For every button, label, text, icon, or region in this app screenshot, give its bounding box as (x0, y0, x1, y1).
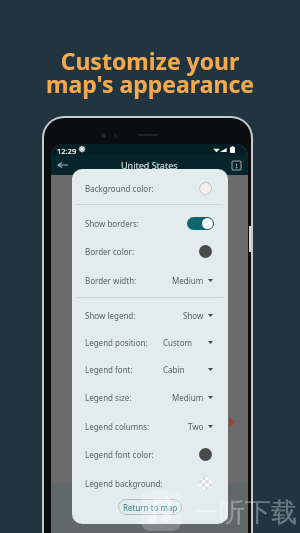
button[interactable]: Pick colour (199, 182, 212, 195)
button[interactable]: Two (188, 421, 213, 432)
button[interactable]: Pick colour (199, 477, 212, 490)
button[interactable]: Legend font color: (72, 440, 228, 468)
staticText: Border width: (85, 275, 137, 286)
button[interactable]: Show legend: (72, 301, 228, 329)
button[interactable]: Medium (172, 392, 213, 403)
staticText: Show borders: (85, 218, 139, 229)
staticText: Customize your map's appearance (46, 45, 254, 100)
staticText: Border color: (85, 246, 135, 257)
staticText: United States (121, 159, 178, 171)
button[interactable]: Back (55, 157, 71, 173)
staticText: Legend font color: (85, 449, 154, 460)
button[interactable]: Legend position: (72, 328, 228, 356)
staticText: Show (183, 310, 204, 321)
button[interactable]: Show (183, 310, 213, 321)
staticText: 一听下载 (193, 496, 297, 529)
button[interactable]: Border width: (72, 266, 228, 294)
button[interactable]: Medium (172, 275, 213, 286)
button[interactable]: Return to map (118, 499, 182, 515)
staticText: Legend background: (85, 478, 163, 489)
button[interactable]: Legend columns: (72, 412, 228, 440)
staticText: Two (188, 421, 204, 432)
button[interactable]: Show borders toggle (187, 217, 214, 230)
staticText: Return to map (123, 502, 178, 513)
staticText: Medium (172, 392, 204, 403)
button[interactable]: Help (231, 160, 242, 171)
staticText: Background color: (85, 183, 154, 194)
staticText: Legend font: (85, 364, 133, 375)
staticText: Cabin (163, 364, 185, 375)
button[interactable]: Legend font: (72, 355, 228, 383)
staticText: Custom (163, 337, 193, 348)
staticText: Legend columns: (85, 421, 150, 432)
staticText: Legend position: (85, 337, 148, 348)
staticText: Medium (172, 275, 204, 286)
button[interactable]: Legend size: (72, 383, 228, 411)
button[interactable]: Show borders: (72, 209, 228, 237)
staticText: Show legend: (85, 310, 136, 321)
button[interactable]: Pick colour (199, 448, 212, 461)
staticText: 12:29 (57, 146, 77, 156)
button[interactable]: Legend background: (72, 469, 228, 497)
staticText: Legend size: (85, 392, 132, 403)
button[interactable]: Background color: (72, 174, 228, 202)
button[interactable]: Pick colour (199, 245, 212, 258)
button[interactable]: Custom (163, 337, 213, 348)
button[interactable]: Cabin (163, 364, 213, 375)
button[interactable]: Border color: (72, 237, 228, 265)
